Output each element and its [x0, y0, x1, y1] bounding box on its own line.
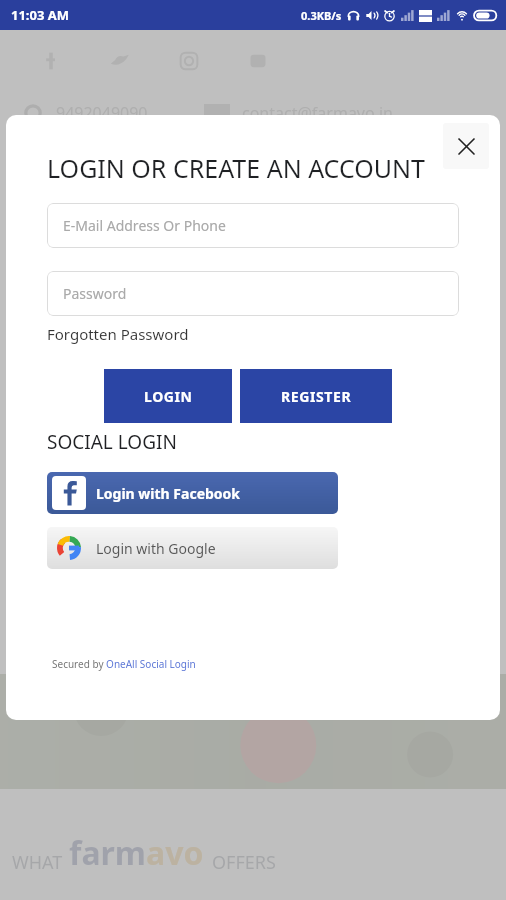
staticText: 9492049090 [56, 102, 148, 124]
staticText: Login with Facebook [96, 484, 241, 503]
staticText: Login with Google [96, 539, 216, 558]
staticText: REGISTER [281, 387, 352, 406]
staticText: OFFERS [212, 850, 276, 875]
staticText: LOGIN OR CREATE AN ACCOUNT [47, 151, 425, 185]
staticText: LOGIN [144, 387, 193, 406]
button[interactable]: Close [443, 123, 489, 169]
staticText: 0.3KB/s [301, 8, 342, 23]
staticText: Password [63, 284, 127, 303]
button[interactable]: Password [47, 271, 459, 316]
button[interactable]: Forgotten Password [47, 324, 189, 344]
button[interactable]: E-Mail Address Or Phone [47, 203, 459, 248]
staticText: contact@farmavo.in [242, 102, 393, 124]
staticText: WHAT [12, 850, 63, 875]
button[interactable]: Secured by OneAll Social Login [52, 657, 196, 671]
staticText: farmavo [69, 831, 204, 875]
button[interactable]: Login with Facebook [47, 472, 338, 514]
staticText: SOCIAL LOGIN [47, 429, 177, 455]
button[interactable]: LOGIN [104, 369, 232, 423]
button[interactable]: REGISTER [240, 369, 392, 423]
staticText: 11:03 AM [11, 6, 70, 24]
staticText: E-Mail Address Or Phone [63, 216, 226, 235]
button[interactable]: Login with Google [47, 527, 338, 569]
